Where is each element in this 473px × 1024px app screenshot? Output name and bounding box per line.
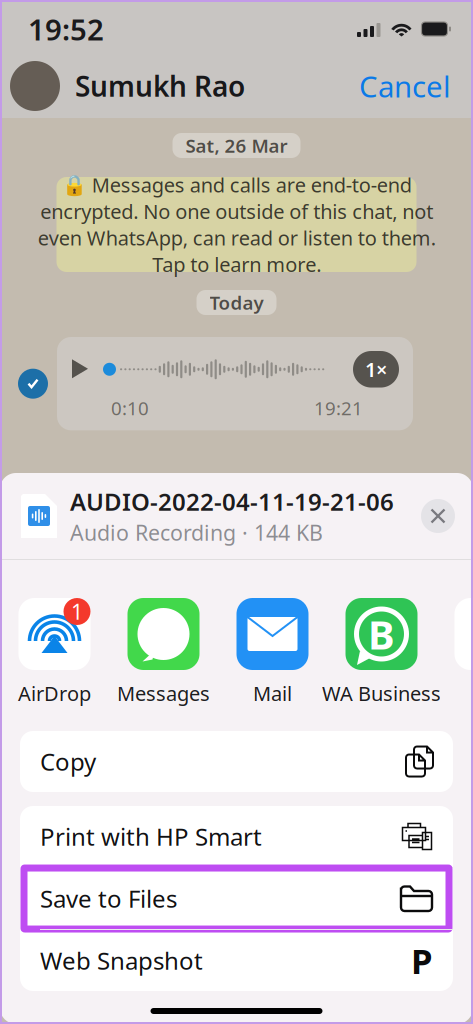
button[interactable]: B [327, 598, 436, 708]
staticText: 1× [365, 356, 387, 383]
button[interactable]: Print with HP Smart [20, 806, 453, 867]
button[interactable]: Mail [218, 598, 327, 708]
staticText: Sumukh Rao [75, 67, 245, 105]
staticText: Web Snapshot [40, 945, 203, 976]
button[interactable]: 1 [0, 598, 109, 708]
staticText: 19:21 [314, 396, 363, 420]
staticText: AUDIO-2022-04-11-19-21-06 [70, 485, 394, 517]
staticText: Print with HP Smart [40, 821, 262, 852]
staticText: Messages [117, 680, 210, 707]
staticText: Mail [253, 680, 292, 707]
staticText: 1 [71, 597, 83, 626]
staticText: AirDrop [18, 680, 91, 707]
button[interactable]: Cancel [347, 56, 473, 115]
staticText: Save to Files [40, 883, 177, 914]
staticText: Today [209, 290, 263, 315]
button[interactable]: Messages [109, 598, 218, 708]
staticText: Copy [40, 746, 96, 777]
staticText: 0:10 [111, 396, 149, 420]
button[interactable]: Save to Files [20, 868, 453, 929]
staticText: 19:52 [28, 9, 104, 48]
staticText: P [411, 937, 433, 983]
staticText: Audio Recording · 144 KB [70, 518, 323, 547]
button[interactable]: Copy [20, 731, 453, 792]
staticText: B [368, 607, 395, 660]
button[interactable]: Web Snapshot [20, 930, 453, 991]
staticText: 🔒 Messages and calls are end-to-end encr… [37, 171, 435, 278]
staticText: WA Business [322, 680, 441, 707]
button[interactable]: Tru [436, 598, 473, 708]
staticText: Cancel [359, 66, 451, 105]
staticText: Sat, 26 Mar [185, 133, 287, 158]
button[interactable]: Close [421, 499, 455, 533]
